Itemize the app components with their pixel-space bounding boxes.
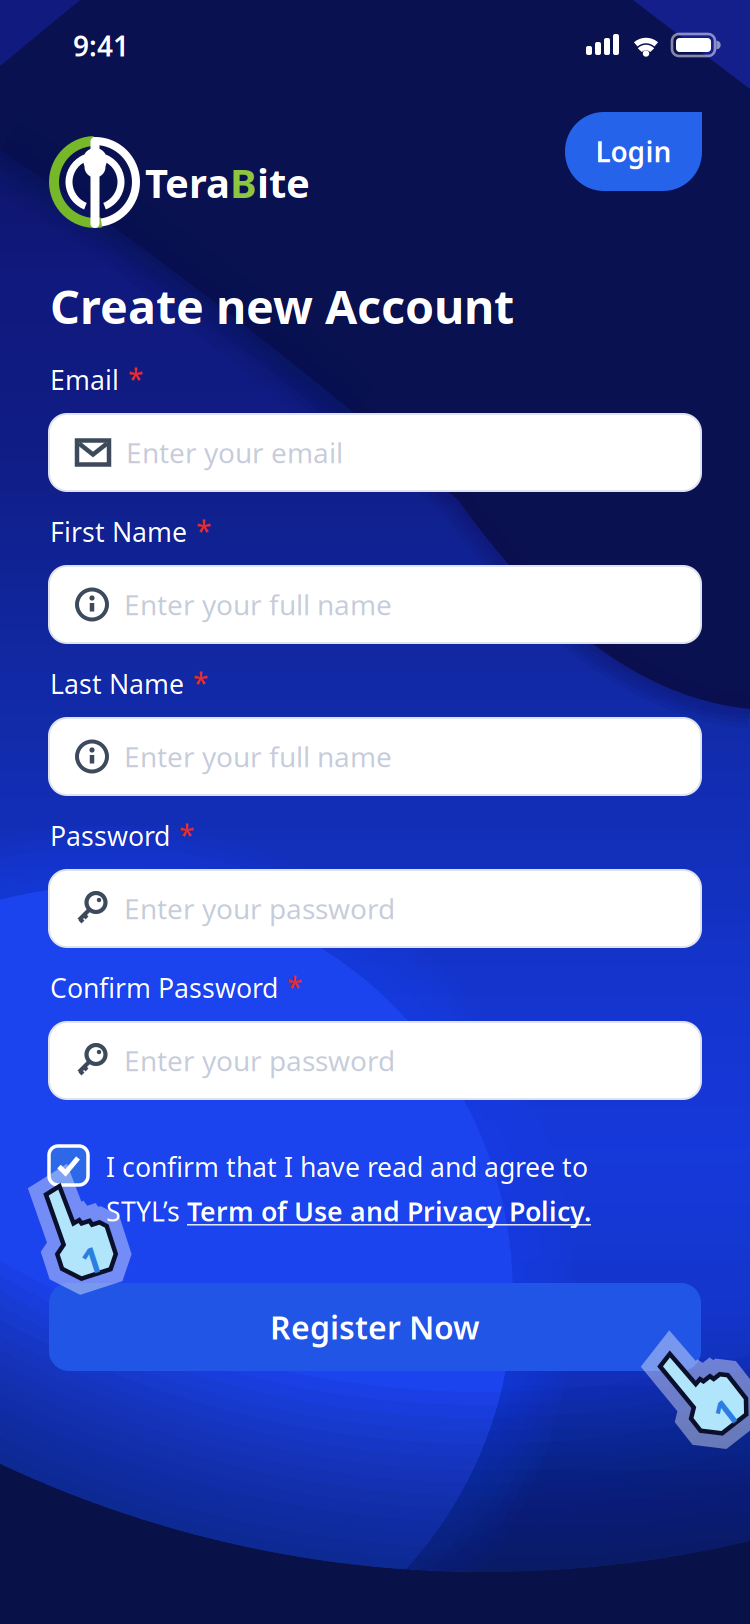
staticText: Term of Use and Privacy Policy. bbox=[187, 1193, 591, 1229]
staticText: Enter your password bbox=[124, 890, 395, 927]
button[interactable]: Enter your full name bbox=[49, 718, 701, 795]
staticText: * bbox=[193, 664, 208, 701]
staticText: ite bbox=[257, 156, 310, 209]
staticText: 9:41 bbox=[73, 27, 129, 64]
staticText: Login bbox=[595, 133, 671, 170]
button[interactable]: Term of Use and Privacy Policy. bbox=[187, 1193, 591, 1229]
staticText: Enter your full name bbox=[124, 738, 392, 775]
staticText: First Name bbox=[50, 514, 187, 549]
staticText: Create new Account bbox=[50, 275, 514, 337]
button[interactable]: Enter your full name bbox=[49, 566, 701, 643]
staticText: Enter your password bbox=[124, 1042, 395, 1079]
button[interactable]: Agree to terms bbox=[49, 1146, 88, 1185]
staticText: Enter your full name bbox=[124, 586, 392, 623]
staticText: STYL’s bbox=[106, 1193, 187, 1229]
staticText: Email bbox=[50, 362, 119, 397]
staticText: Password bbox=[50, 818, 170, 853]
button[interactable]: Login bbox=[565, 112, 702, 191]
staticText: B bbox=[230, 156, 257, 209]
staticText: 1 bbox=[697, 1398, 718, 1446]
staticText: Last Name bbox=[50, 666, 184, 701]
staticText: I confirm that I have read and agree to bbox=[106, 1149, 588, 1184]
button[interactable]: Enter your email bbox=[49, 414, 701, 491]
staticText: 1 bbox=[72, 1239, 93, 1287]
staticText: Tera bbox=[145, 156, 230, 209]
staticText: Confirm Password bbox=[50, 970, 278, 1005]
staticText: * bbox=[287, 968, 302, 1005]
staticText: Register Now bbox=[270, 1306, 480, 1348]
button[interactable]: Enter your password bbox=[49, 1022, 701, 1099]
staticText: * bbox=[128, 360, 143, 397]
button[interactable]: Enter your password bbox=[49, 870, 701, 947]
staticText: * bbox=[179, 816, 194, 853]
staticText: Enter your email bbox=[126, 434, 343, 471]
button[interactable]: Register Now bbox=[49, 1283, 701, 1371]
staticText: * bbox=[196, 512, 211, 549]
